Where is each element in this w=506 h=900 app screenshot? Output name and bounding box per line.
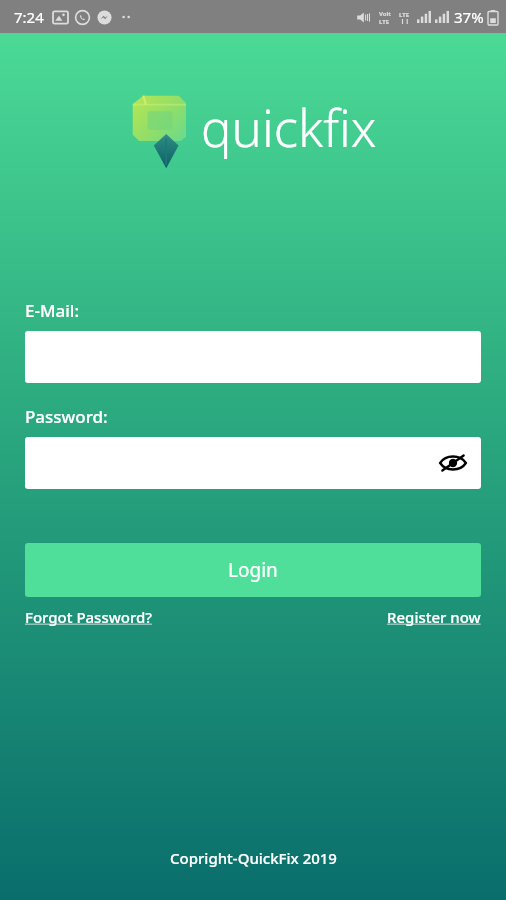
staticText: Password:: [25, 405, 108, 428]
button[interactable]: Forgot Password?: [25, 607, 153, 627]
button[interactable]: Register now: [387, 607, 481, 627]
button[interactable]: Login: [25, 543, 481, 597]
staticText: Volt: [379, 10, 391, 18]
staticText: LTE: [399, 11, 410, 19]
staticText: quickfix: [201, 92, 377, 161]
staticText: 7:24: [14, 7, 44, 27]
staticText: E-Mail:: [25, 299, 80, 322]
staticText: 37%: [454, 7, 484, 27]
staticText: Register now: [387, 607, 481, 627]
staticText: Forgot Password?: [25, 607, 153, 627]
staticText: Copright-QuickFix 2019: [170, 848, 337, 868]
button[interactable]: Show password: [433, 443, 473, 483]
staticText: LTE: [379, 18, 390, 24]
staticText: Login: [228, 557, 278, 583]
